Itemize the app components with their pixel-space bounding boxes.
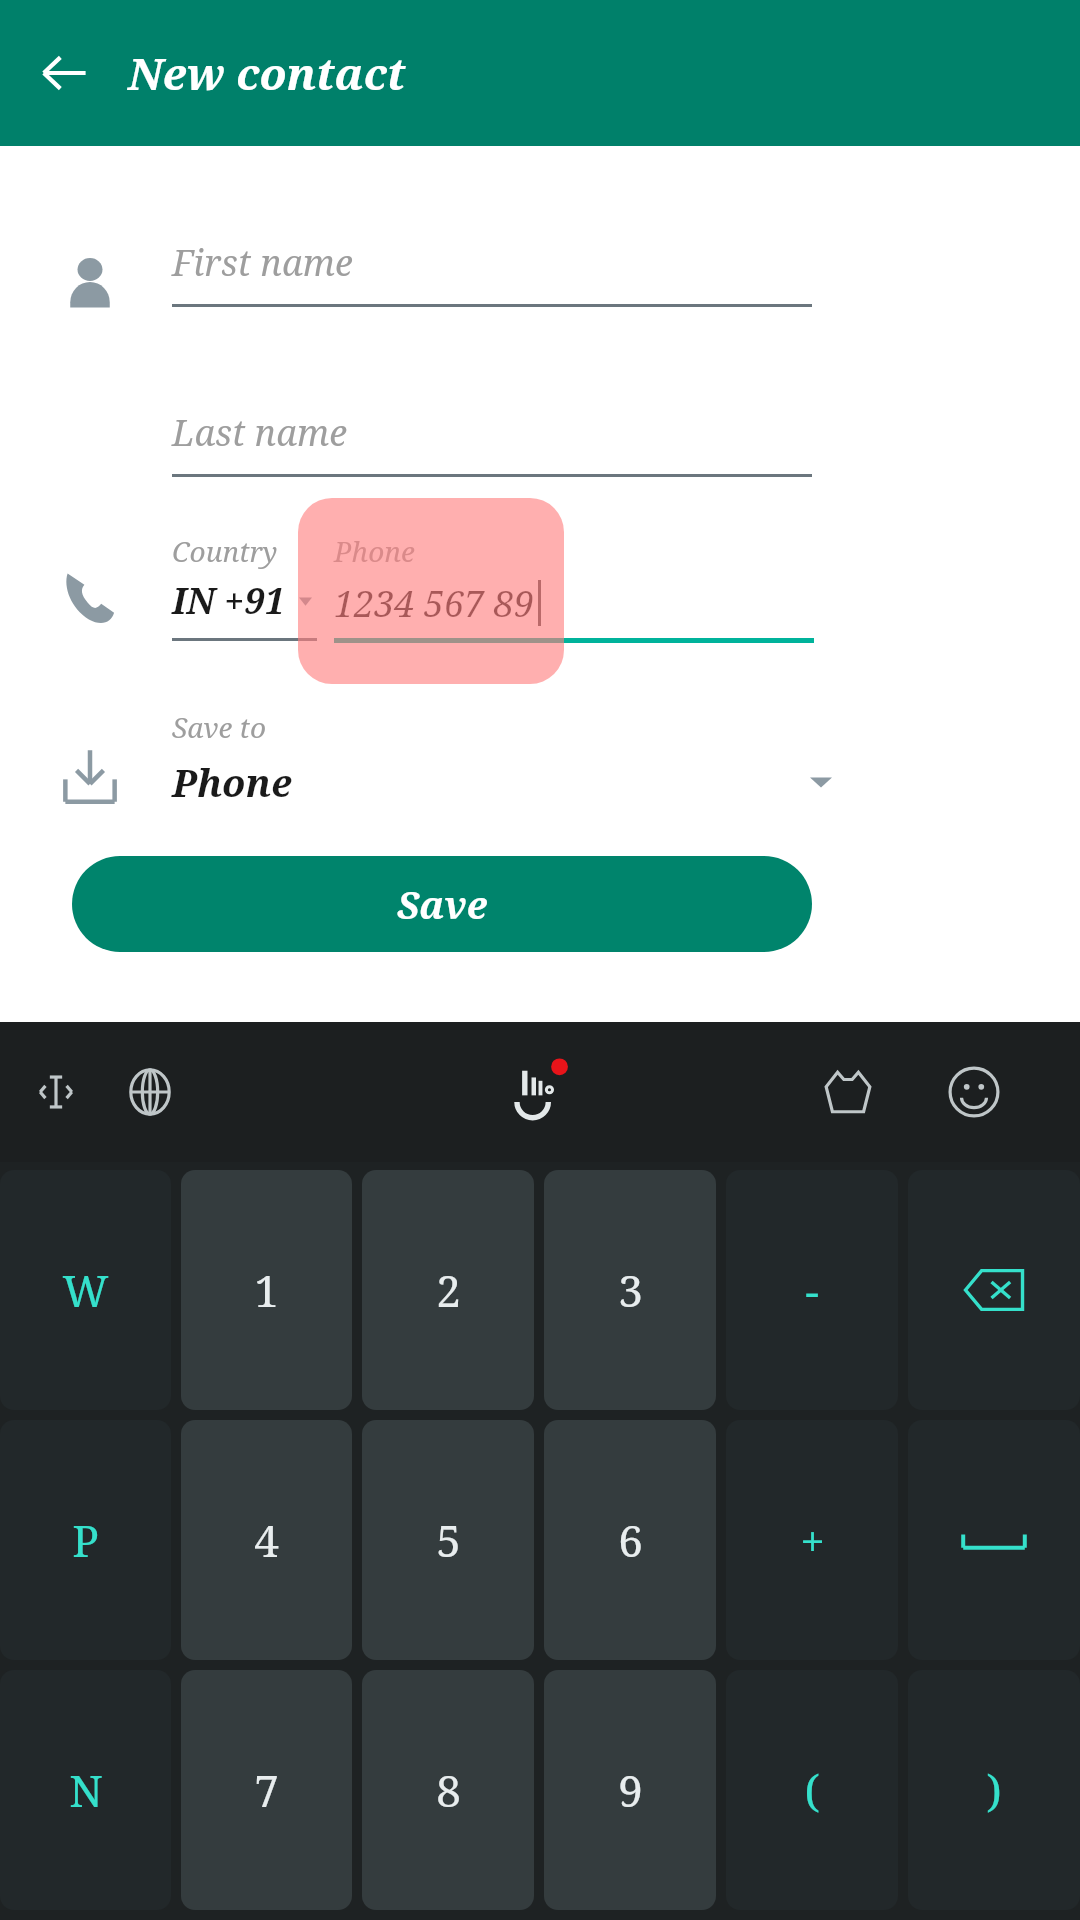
- staticText: ): [986, 1760, 1002, 1820]
- button[interactable]: 9: [544, 1670, 716, 1910]
- button[interactable]: 1: [181, 1170, 352, 1410]
- button[interactable]: Emoji: [938, 1056, 1010, 1128]
- staticText: P: [72, 1510, 99, 1570]
- button[interactable]: 4: [181, 1420, 352, 1660]
- button[interactable]: Gesture typing: [494, 1050, 578, 1134]
- staticText: 1234 567 89: [334, 579, 534, 628]
- staticText: N: [69, 1760, 103, 1820]
- button[interactable]: Themes: [812, 1056, 884, 1128]
- staticText: +: [800, 1510, 825, 1570]
- staticText: 2: [436, 1260, 461, 1320]
- staticText: IN +91: [172, 576, 285, 625]
- button[interactable]: Backspace: [908, 1170, 1080, 1410]
- button[interactable]: 2: [362, 1170, 534, 1410]
- staticText: First name: [172, 238, 353, 287]
- staticText: 5: [436, 1510, 461, 1570]
- staticText: 8: [436, 1760, 461, 1820]
- staticText: 7: [254, 1760, 279, 1820]
- button[interactable]: (: [726, 1670, 898, 1910]
- staticText: 6: [618, 1510, 643, 1570]
- button[interactable]: Space: [908, 1420, 1080, 1660]
- button[interactable]: 8: [362, 1670, 534, 1910]
- button[interactable]: Change language: [116, 1058, 184, 1126]
- button[interactable]: Back: [26, 35, 102, 111]
- button[interactable]: Save: [72, 856, 812, 952]
- staticText: W: [62, 1260, 109, 1320]
- button[interactable]: Phone: [172, 752, 832, 812]
- staticText: New contact: [128, 43, 406, 103]
- staticText: Phone: [172, 756, 292, 808]
- button[interactable]: -: [726, 1170, 898, 1410]
- button[interactable]: 5: [362, 1420, 534, 1660]
- button[interactable]: +: [726, 1420, 898, 1660]
- button[interactable]: Move cursor: [22, 1058, 90, 1126]
- button[interactable]: 3: [544, 1170, 716, 1410]
- staticText: 9: [618, 1760, 643, 1820]
- staticText: Phone: [334, 532, 415, 570]
- staticText: Country: [172, 532, 278, 570]
- staticText: (: [804, 1760, 820, 1820]
- staticText: Save to: [172, 708, 266, 746]
- button[interactable]: ): [908, 1670, 1080, 1910]
- staticText: Last name: [172, 408, 347, 457]
- staticText: -: [805, 1260, 819, 1320]
- staticText: 1: [254, 1260, 279, 1320]
- staticText: 3: [618, 1260, 643, 1320]
- staticText: Save: [397, 878, 488, 930]
- button[interactable]: IN +91: [172, 576, 312, 625]
- button[interactable]: N: [0, 1670, 171, 1910]
- button[interactable]: W: [0, 1170, 171, 1410]
- button[interactable]: 6: [544, 1420, 716, 1660]
- staticText: 4: [254, 1510, 279, 1570]
- button[interactable]: 7: [181, 1670, 352, 1910]
- button[interactable]: P: [0, 1420, 171, 1660]
